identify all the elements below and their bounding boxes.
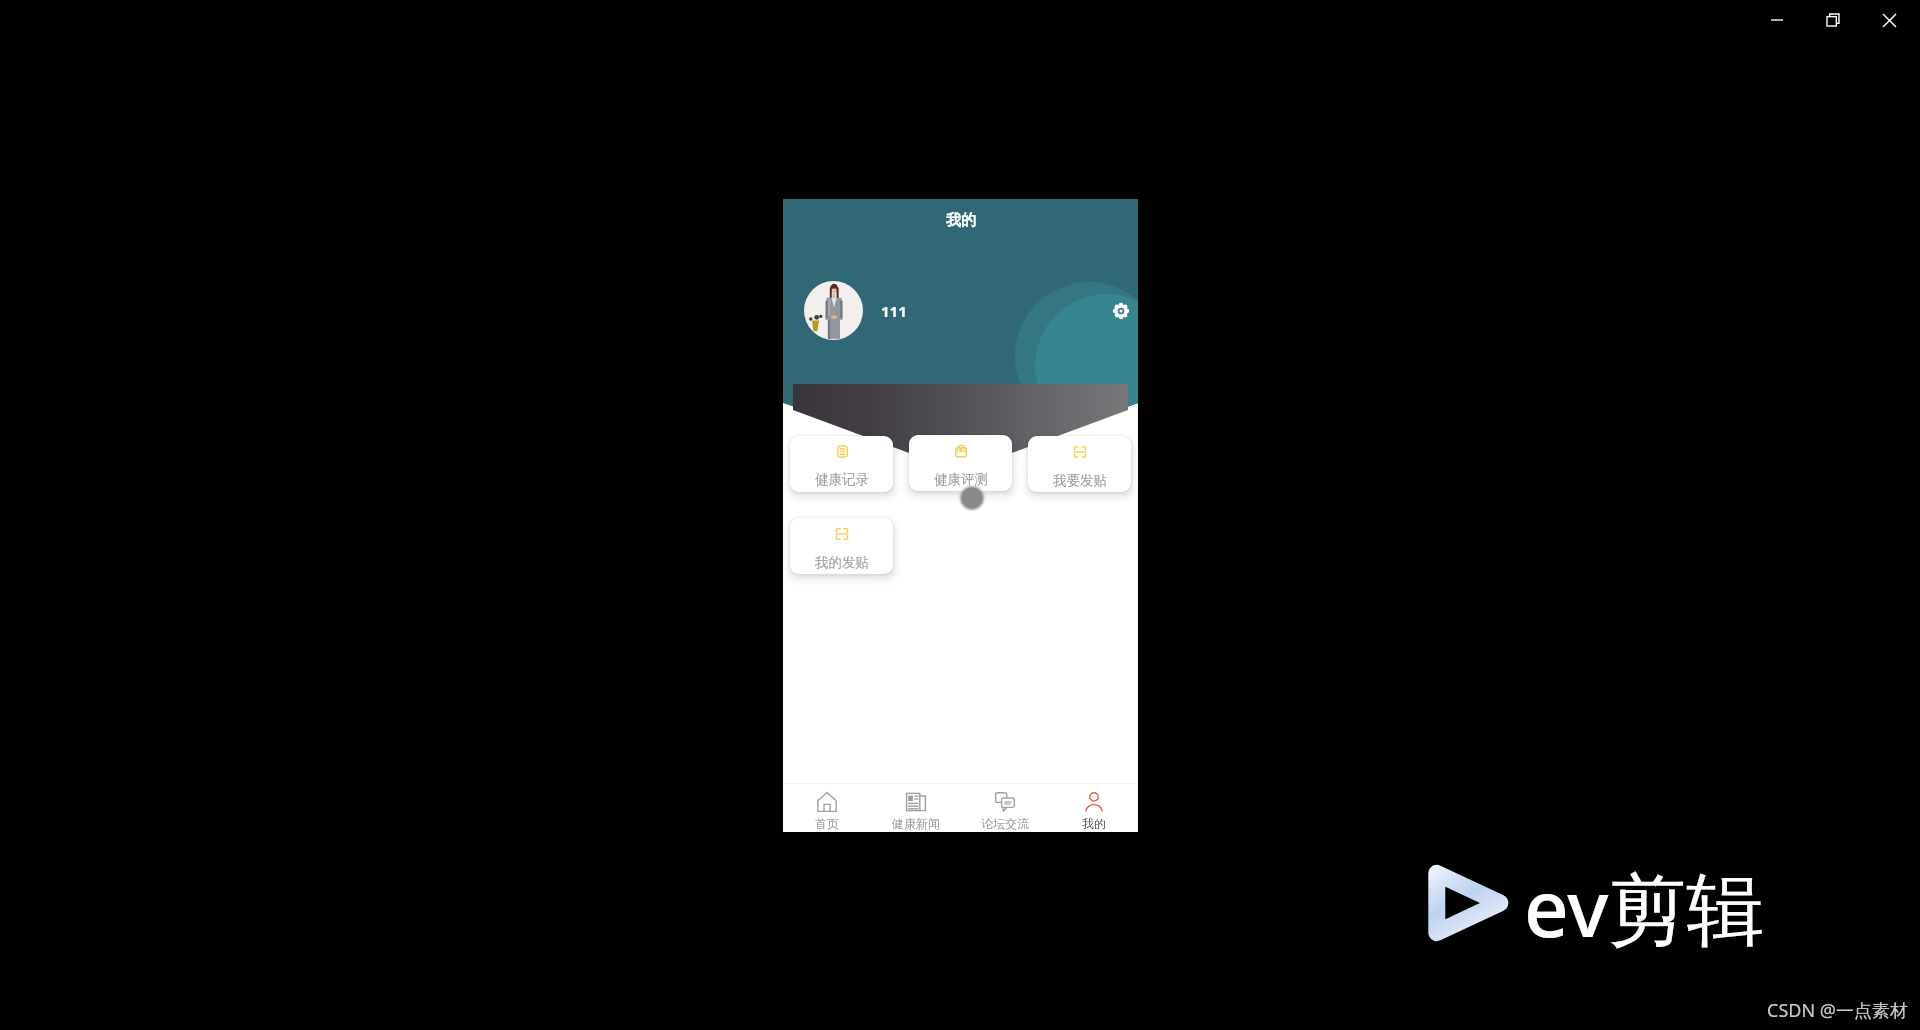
staticText: 健康新闻 (892, 816, 940, 831)
staticText: 我要发贴 (1053, 472, 1107, 489)
staticText: 健康评测 (934, 471, 988, 488)
staticText: ev剪辑 (1524, 854, 1765, 961)
staticText: 首页 (815, 816, 839, 831)
staticText: 论坛交流 (981, 816, 1029, 831)
button[interactable]: 我的 (1049, 784, 1138, 832)
button[interactable]: 首页 (783, 784, 871, 832)
button[interactable]: 健康记录 (790, 436, 893, 492)
button[interactable]: Close (1861, 1, 1917, 39)
button[interactable]: 健康评测 (909, 435, 1012, 491)
staticText: 健康记录 (815, 471, 869, 488)
staticText: CSDN @一点素材 (1767, 998, 1908, 1023)
button[interactable]: 健康新闻 (871, 784, 960, 832)
button[interactable]: 我的发贴 (790, 518, 893, 574)
staticText: 111 (881, 301, 907, 321)
button[interactable]: 我要发贴 (1028, 436, 1131, 492)
button[interactable]: Settings (1107, 297, 1135, 325)
button[interactable]: Profile photo (804, 281, 863, 340)
button[interactable]: 论坛交流 (960, 784, 1049, 832)
staticText: 我的 (1082, 816, 1106, 831)
button[interactable]: Maximize (1805, 1, 1861, 39)
staticText: 我的 (946, 211, 976, 230)
button[interactable]: Minimize (1749, 1, 1805, 39)
staticText: 我的发贴 (815, 554, 869, 571)
